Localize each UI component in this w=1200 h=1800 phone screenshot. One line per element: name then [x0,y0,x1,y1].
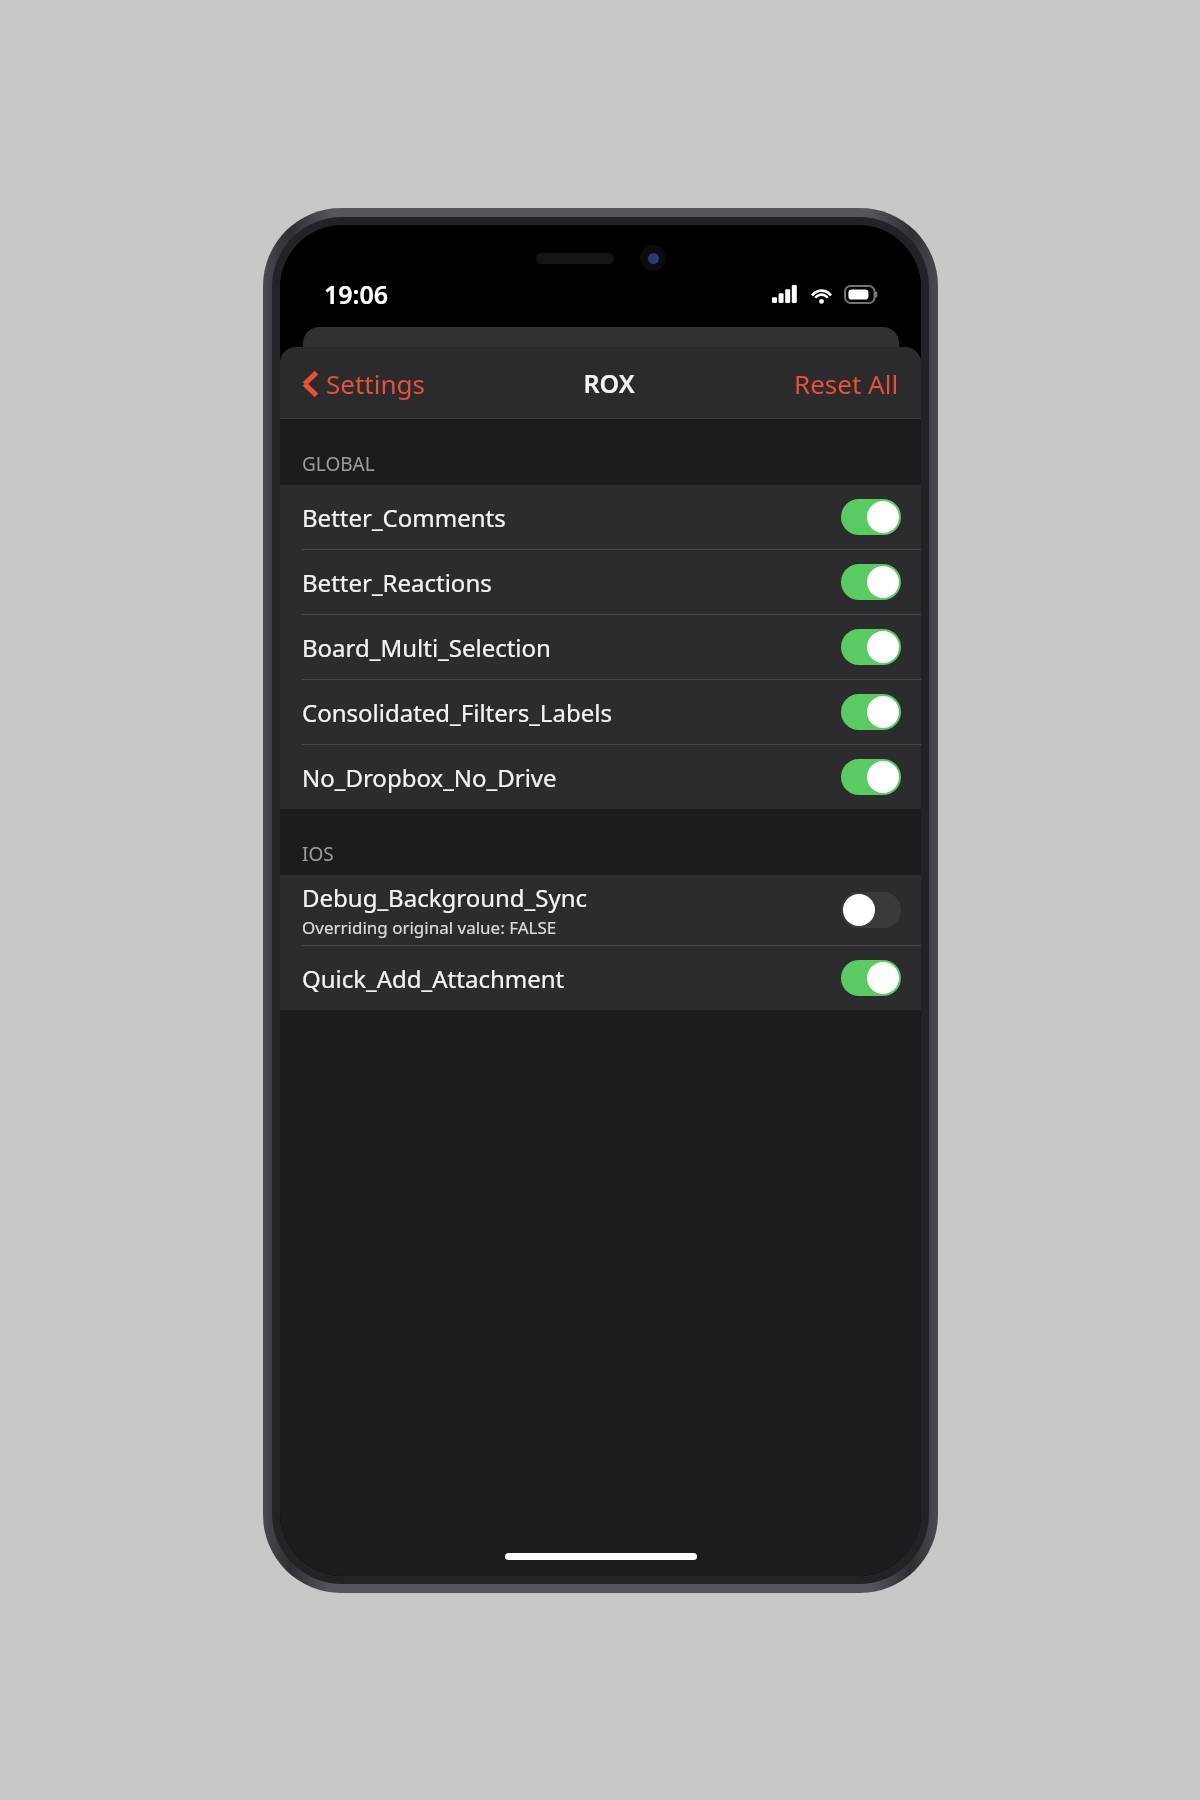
staticText: Quick_Add_Attachment [302,962,565,995]
button[interactable]: Debug_Background_Sync [280,875,921,945]
staticText: IOS [302,841,334,867]
button[interactable]: Toggle on [841,694,901,730]
staticText: Better_Comments [302,501,506,534]
staticText: No_Dropbox_No_Drive [302,761,557,794]
staticText: Board_Multi_Selection [302,631,551,664]
button[interactable]: Quick_Add_Attachment [280,945,921,1010]
button[interactable]: Toggle off [841,892,901,928]
button[interactable]: No_Dropbox_No_Drive [280,744,921,809]
button[interactable]: Better_Comments [280,485,921,549]
button[interactable]: Toggle on [841,499,901,535]
staticText: 19:06 [324,277,389,311]
button[interactable]: Consolidated_Filters_Labels [280,679,921,744]
staticText: Overriding original value: FALSE [302,916,557,939]
button[interactable]: Better_Reactions [280,549,921,614]
staticText: Better_Reactions [302,566,492,599]
staticText: GLOBAL [302,451,375,477]
staticText: Consolidated_Filters_Labels [302,696,612,729]
button[interactable]: Reset All [788,360,905,407]
button[interactable]: Toggle on [841,564,901,600]
button[interactable]: Toggle on [841,629,901,665]
staticText: Settings [326,366,425,401]
staticText: ROX [583,366,635,400]
button[interactable]: Toggle on [841,759,901,795]
staticText: Reset All [794,366,899,401]
button[interactable]: Toggle on [841,960,901,996]
button[interactable]: Settings [296,360,431,407]
staticText: Debug_Background_Sync [302,881,588,914]
button[interactable]: Board_Multi_Selection [280,614,921,679]
